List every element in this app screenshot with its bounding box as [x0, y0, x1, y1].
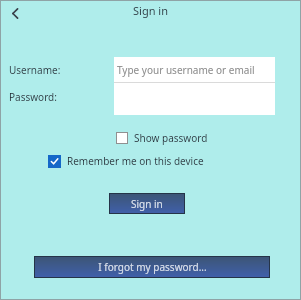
- button[interactable]: Type your username or email: [114, 57, 275, 82]
- button[interactable]: Remember me on this device: [48, 154, 204, 168]
- staticText: Show password: [134, 131, 208, 145]
- staticText: Username:: [9, 63, 61, 77]
- staticText: I forgot my password...: [98, 260, 207, 274]
- button[interactable]: Back: [4, 2, 26, 24]
- button[interactable]: Show password: [116, 131, 208, 145]
- button[interactable]: Sign in: [109, 193, 185, 214]
- staticText: Password:: [9, 90, 57, 104]
- staticText: Remember me on this device: [67, 154, 204, 168]
- staticText: Type your username or email: [117, 63, 255, 77]
- button[interactable]: I forgot my password...: [34, 256, 270, 278]
- staticText: Sign in: [131, 197, 163, 211]
- staticText: Sign in: [133, 3, 168, 18]
